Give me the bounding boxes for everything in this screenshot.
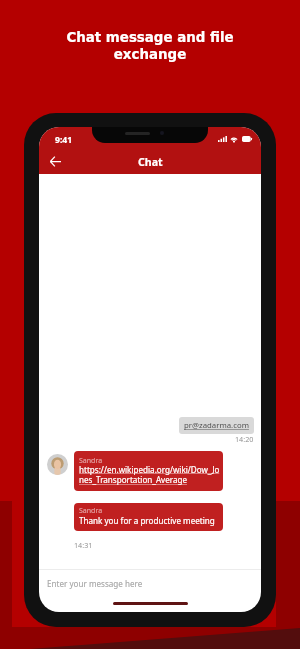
- staticText: Thank you for a productive meeting: [79, 515, 215, 526]
- button[interactable]: Back: [45, 151, 66, 172]
- staticText: Sandra: [79, 456, 103, 466]
- staticText: 14:20: [235, 434, 254, 444]
- button[interactable]: Sandra: [74, 503, 223, 531]
- button[interactable]: Enter your message here: [47, 578, 143, 589]
- staticText: Sandra: [79, 506, 103, 516]
- staticText: Chat: [138, 155, 163, 169]
- staticText: https://en.wikipedia.org/wiki/Dow_Jo nes…: [79, 464, 220, 486]
- staticText: 14:31: [74, 540, 93, 550]
- staticText: pr@zadarma.com: [184, 420, 249, 431]
- button[interactable]: pr@zadarma.com: [179, 417, 254, 434]
- button[interactable]: Sandra: [74, 451, 223, 491]
- staticText: 9:41: [55, 134, 73, 146]
- staticText: Chat message and file exchange: [0, 30, 300, 62]
